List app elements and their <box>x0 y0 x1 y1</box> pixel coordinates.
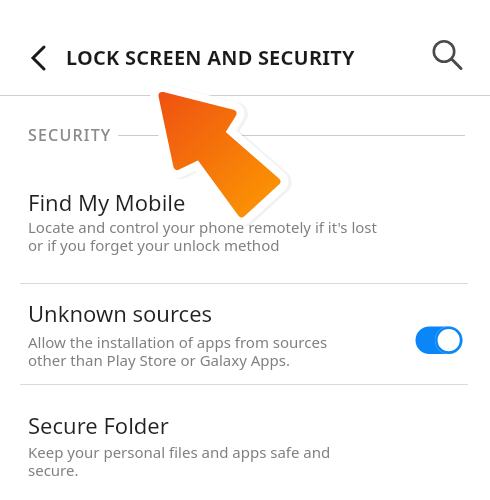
staticText: SECURITY <box>28 124 112 146</box>
button[interactable] <box>426 36 470 80</box>
button[interactable]: Secure Folder <box>0 410 490 480</box>
staticText: Unknown sources <box>28 298 213 328</box>
staticText: Locate and control your phone remotely i… <box>28 217 377 255</box>
button[interactable] <box>20 40 56 76</box>
staticText: Find My Mobile <box>28 187 186 217</box>
button[interactable]: Unknown sources <box>0 298 490 370</box>
staticText: Secure Folder <box>28 410 169 440</box>
button[interactable] <box>412 323 466 357</box>
staticText: LOCK SCREEN AND SECURITY <box>66 44 355 71</box>
staticText: Allow the installation of apps from sour… <box>28 332 328 370</box>
staticText: Keep your personal files and apps safe a… <box>28 442 331 480</box>
button[interactable]: Find My Mobile <box>0 187 490 255</box>
